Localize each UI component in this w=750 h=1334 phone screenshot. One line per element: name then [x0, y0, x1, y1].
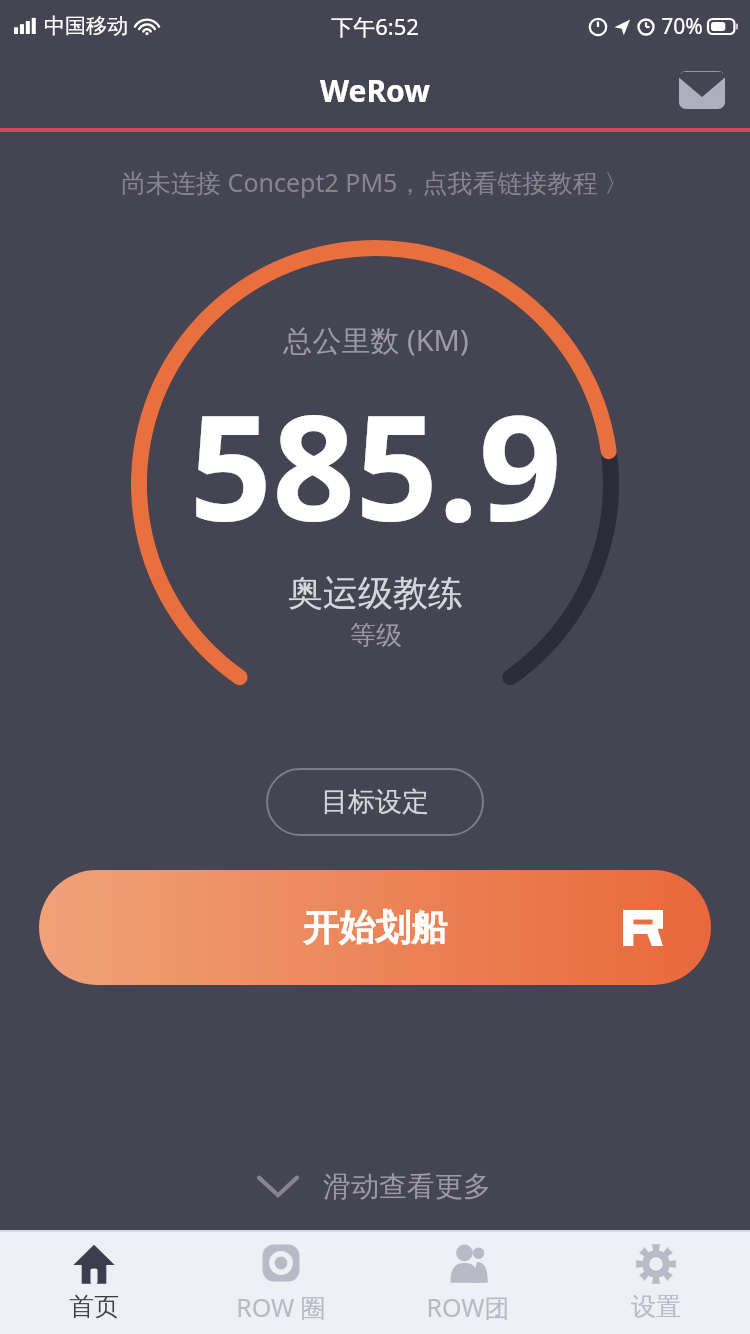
- staticText: 尚未连接 Concept2 PM5，点我看链接教程 〉: [121, 165, 629, 199]
- staticText: 首页: [69, 1291, 119, 1322]
- staticText: 奥运级教练: [288, 571, 463, 615]
- staticText: 下午6:52: [331, 11, 419, 41]
- staticText: 中国移动: [44, 13, 128, 39]
- staticText: 585.9: [189, 366, 562, 563]
- staticText: 总公里数 (KM): [283, 320, 469, 360]
- staticText: 滑动查看更多: [323, 1169, 491, 1204]
- staticText: 目标设定: [321, 785, 429, 819]
- button[interactable]: 设置: [562, 1230, 750, 1334]
- button[interactable]: 目标设定: [266, 768, 484, 836]
- button[interactable]: 开始划船: [39, 870, 711, 985]
- button[interactable]: 滑动查看更多: [0, 1156, 750, 1216]
- button[interactable]: ROW团: [374, 1230, 562, 1334]
- staticText: ROW 圈: [236, 1290, 326, 1324]
- button[interactable]: 首页: [0, 1230, 187, 1334]
- staticText: 70%: [661, 12, 703, 41]
- staticText: ROW团: [426, 1290, 510, 1324]
- button[interactable]: Messages: [674, 62, 730, 118]
- button[interactable]: ROW 圈: [187, 1230, 374, 1334]
- staticText: 设置: [631, 1291, 681, 1322]
- button[interactable]: 尚未连接 Concept2 PM5，点我看链接教程 〉: [0, 154, 750, 210]
- staticText: WeRow: [320, 70, 430, 111]
- staticText: 开始划船: [303, 905, 447, 950]
- staticText: 等级: [350, 619, 402, 652]
